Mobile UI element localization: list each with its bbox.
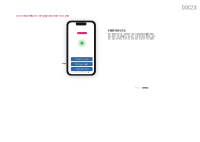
- staticText: Beschreibung: [108, 29, 126, 32]
- button[interactable]: Ergebnis ansehen: [71, 67, 93, 71]
- button[interactable]: Logo: [182, 5, 197, 10]
- staticText: Ergebnis ansehen: [75, 68, 89, 70]
- staticText: Der Benutzer im Connect als Fraktionsmit…: [108, 33, 155, 40]
- button[interactable]: Ad-hoc Test starten: [77, 32, 87, 34]
- staticText: Ad-hoc: [134, 87, 140, 89]
- staticText: Ad-hoc Test: [77, 32, 86, 34]
- button[interactable]: Sitzung verwalten: [71, 62, 93, 66]
- staticText: Test jetzt starten: [75, 58, 89, 60]
- staticText: DOCZX: [182, 5, 197, 10]
- staticText: Connect/Fraktion vorgeplante ad-hoc test: [16, 14, 69, 17]
- button[interactable]: Test jetzt starten: [71, 57, 93, 61]
- staticText: Connect: [142, 87, 149, 89]
- staticText: Sitzung verwalten: [75, 63, 88, 65]
- staticText: Connect Platform: [75, 71, 87, 73]
